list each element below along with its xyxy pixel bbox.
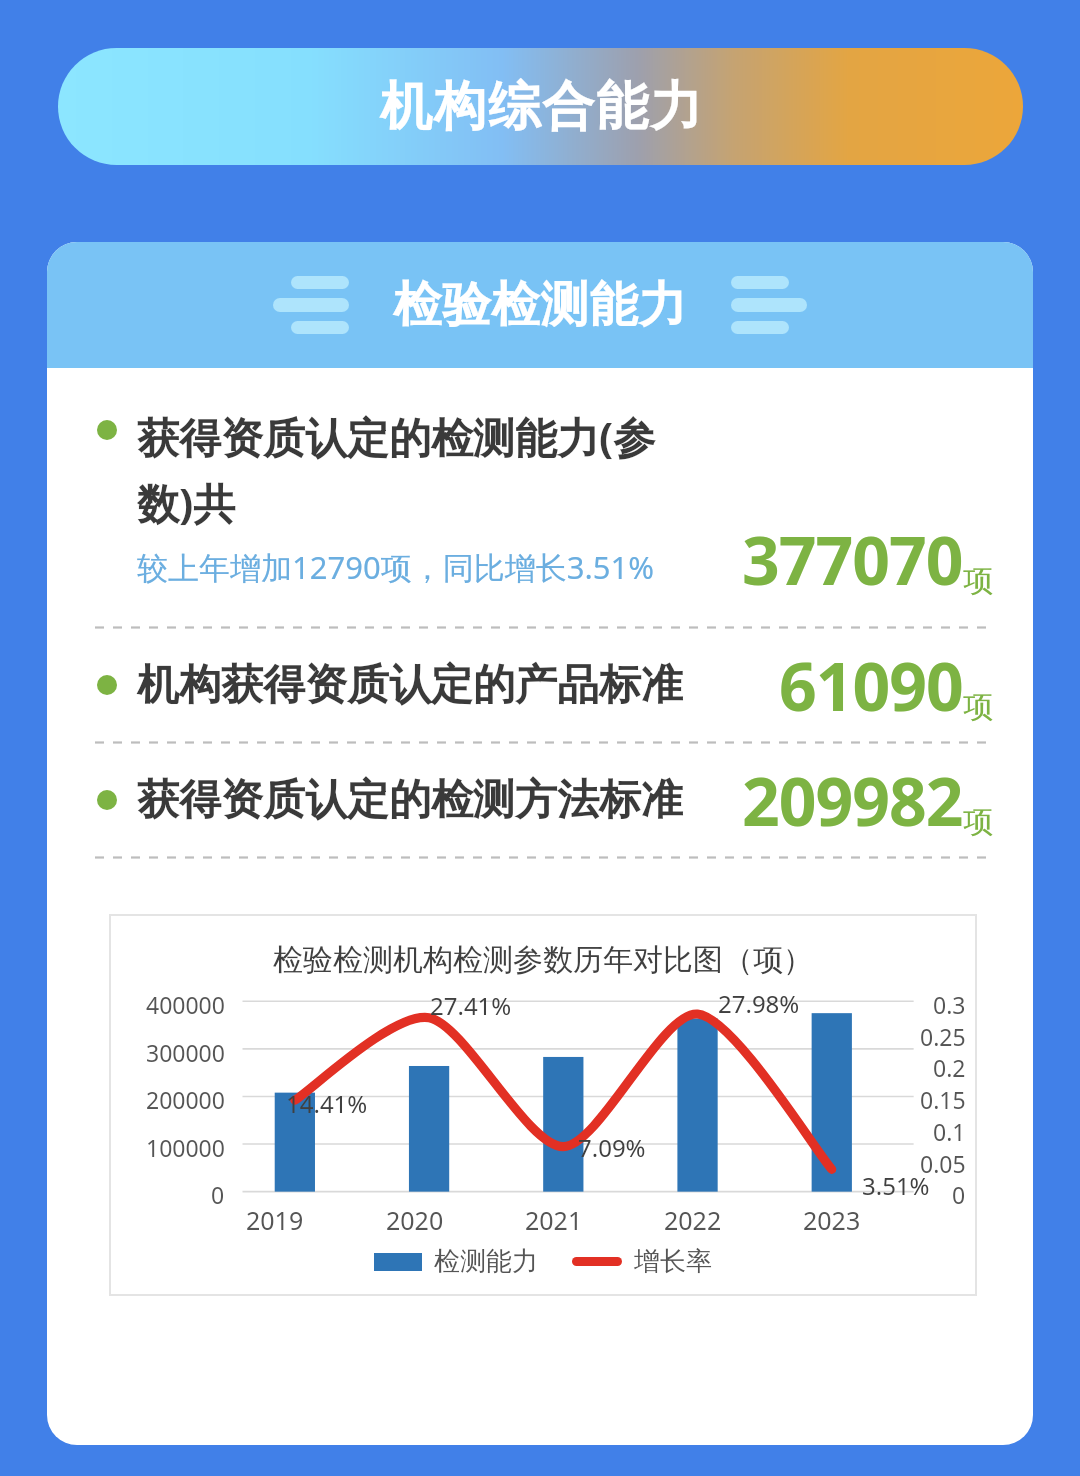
staticText: 300000: [146, 1037, 225, 1068]
staticText: 项: [963, 803, 993, 841]
staticText: 0.15: [920, 1084, 966, 1115]
staticText: 400000: [146, 989, 225, 1020]
staticText: 200000: [146, 1084, 225, 1115]
staticText: 机构综合能力: [379, 74, 703, 140]
staticText: 增长率: [634, 1245, 712, 1278]
staticText: 2022: [664, 1203, 722, 1237]
button[interactable]: 机构获得资质认定的产品标准: [97, 629, 993, 741]
staticText: 检测能力: [434, 1245, 538, 1278]
staticText: 2021: [525, 1203, 583, 1237]
staticText: 14.41%: [286, 1087, 368, 1120]
staticText: 项: [963, 562, 993, 600]
button[interactable]: 检验检测能力: [47, 242, 1033, 368]
staticText: 2019: [246, 1203, 304, 1237]
staticText: 377070: [742, 514, 963, 604]
staticText: 获得资质认定的检测能力(参 数)共: [137, 408, 656, 532]
button[interactable]: 获得资质认定的检测能力(参 数)共: [97, 408, 993, 604]
staticText: 检验检测机构检测参数历年对比图（项）: [273, 941, 813, 979]
button[interactable]: 机构综合能力: [58, 48, 1023, 165]
staticText: 27.41%: [430, 989, 512, 1022]
staticText: 0.05: [920, 1148, 966, 1179]
staticText: 100000: [146, 1132, 225, 1163]
staticText: 机构获得资质认定的产品标准: [137, 659, 683, 712]
button[interactable]: 获得资质认定的检测方法标准: [97, 744, 993, 856]
staticText: 2023: [803, 1203, 861, 1237]
staticText: 0.2: [933, 1052, 966, 1083]
staticText: 0.3: [933, 989, 966, 1020]
staticText: 3.51%: [862, 1169, 930, 1202]
staticText: 项: [963, 688, 993, 726]
staticText: 0: [952, 1179, 966, 1210]
staticText: 209982: [742, 755, 963, 845]
staticText: 61090: [779, 640, 963, 730]
staticText: 0.25: [920, 1021, 966, 1052]
staticText: 27.98%: [718, 987, 800, 1020]
staticText: 0: [211, 1179, 225, 1210]
staticText: 获得资质认定的检测方法标准: [137, 774, 683, 827]
staticText: 较上年增加12790项，同比增长3.51%: [137, 546, 654, 588]
staticText: 7.09%: [578, 1131, 646, 1164]
staticText: 2020: [386, 1203, 444, 1237]
staticText: 0.1: [933, 1116, 966, 1147]
staticText: 检验检测能力: [393, 275, 687, 335]
